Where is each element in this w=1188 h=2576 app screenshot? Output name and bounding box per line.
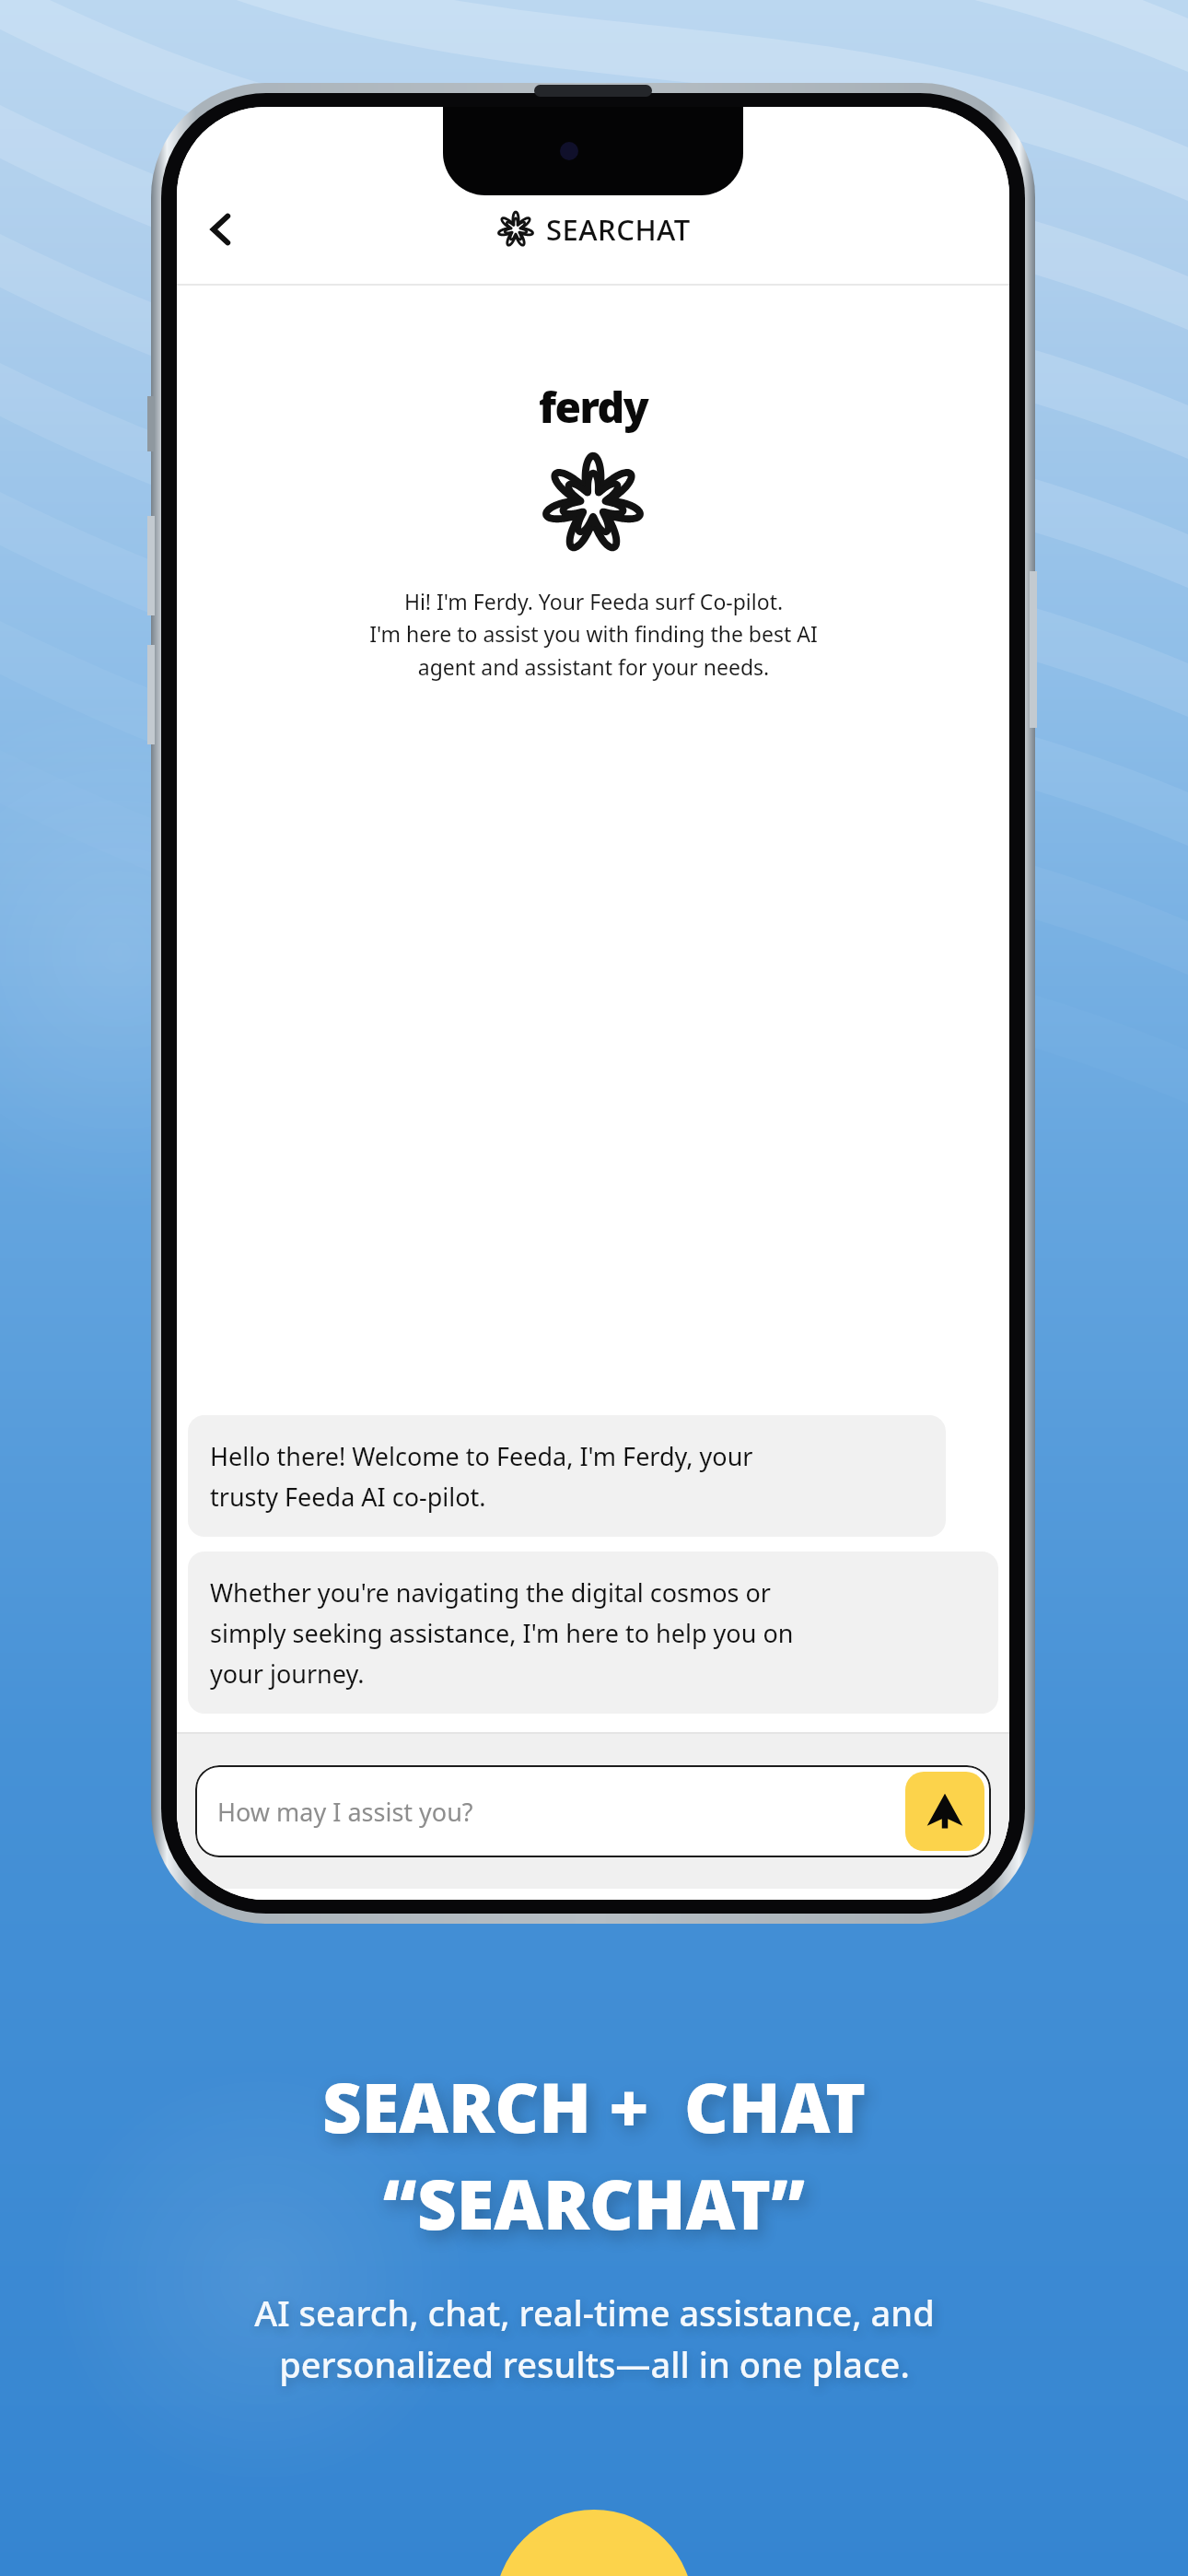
staticText: SEARCHAT xyxy=(546,210,691,249)
button[interactable]: Send xyxy=(905,1772,984,1851)
button[interactable]: Hello there! Welcome to Feeda, I'm Ferdy… xyxy=(188,1415,946,1537)
staticText: AI search, chat, real-time assistance, a… xyxy=(254,2289,935,2388)
button[interactable]: How may I assist you? xyxy=(195,1765,991,1857)
button[interactable]: SEARCHAT xyxy=(496,210,691,249)
button[interactable]: Whether you're navigating the digital co… xyxy=(188,1551,998,1714)
staticText: How may I assist you? xyxy=(217,1795,905,1829)
button[interactable]: Back xyxy=(192,200,250,259)
staticText: SEARCH + CHAT xyxy=(322,2060,866,2153)
staticText: Hi! I'm Ferdy. Your Feeda surf Co-pilot.… xyxy=(369,587,818,682)
staticText: Hello there! Welcome to Feeda, I'm Ferdy… xyxy=(210,1439,753,1513)
staticText: Whether you're navigating the digital co… xyxy=(210,1575,794,1690)
staticText: “SEARCHAT” xyxy=(383,2157,805,2250)
staticText: ferdy xyxy=(539,378,648,436)
